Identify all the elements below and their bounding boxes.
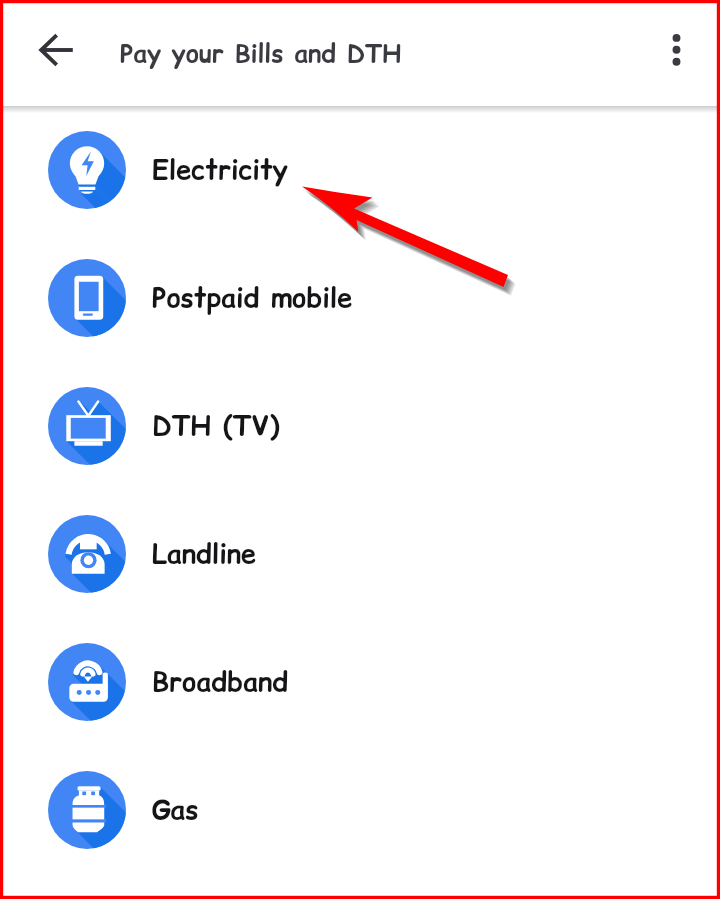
- button[interactable]: Postpaid mobile: [0, 234, 720, 362]
- button[interactable]: Back: [0, 0, 113, 106]
- staticText: Landline: [152, 535, 257, 573]
- button[interactable]: Gas: [0, 746, 720, 874]
- button[interactable]: Electricity: [0, 106, 720, 234]
- button[interactable]: More options: [630, 0, 720, 106]
- staticText: DTH (TV): [152, 407, 280, 445]
- button[interactable]: Broadband: [0, 618, 720, 746]
- staticText: Pay your Bills and DTH: [120, 36, 402, 71]
- button[interactable]: Landline: [0, 490, 720, 618]
- staticText: Electricity: [152, 151, 288, 189]
- staticText: Postpaid mobile: [152, 279, 353, 317]
- button[interactable]: DTH (TV): [0, 362, 720, 490]
- staticText: Gas: [152, 791, 199, 829]
- staticText: Broadband: [152, 663, 289, 701]
